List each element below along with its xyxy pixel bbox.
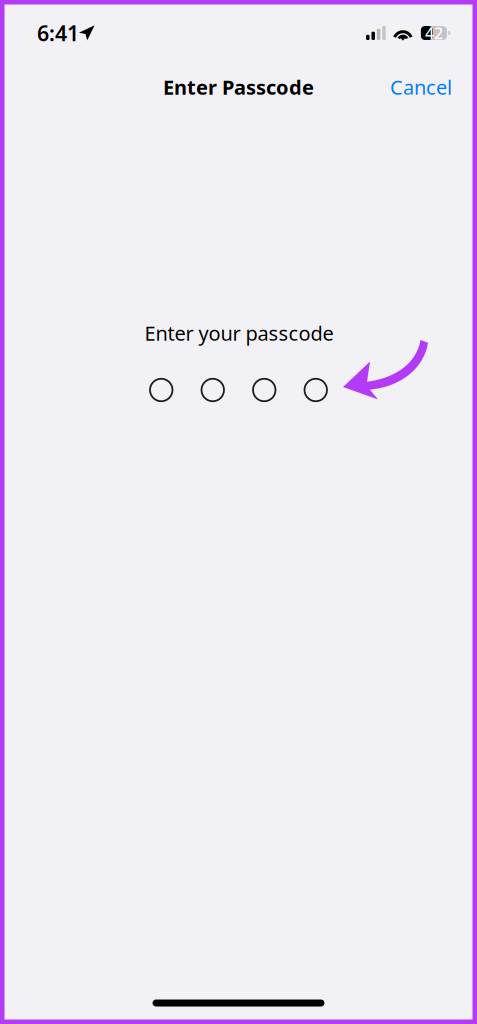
staticText: 42: [425, 22, 443, 44]
staticText: Cancel: [390, 74, 452, 100]
button[interactable]: Passcode field, 4 digits: [150, 379, 327, 401]
staticText: Enter your passcode: [144, 320, 333, 346]
staticText: 6:41: [37, 19, 79, 47]
button[interactable]: Cancel: [382, 65, 460, 109]
staticText: Enter Passcode: [163, 74, 314, 100]
